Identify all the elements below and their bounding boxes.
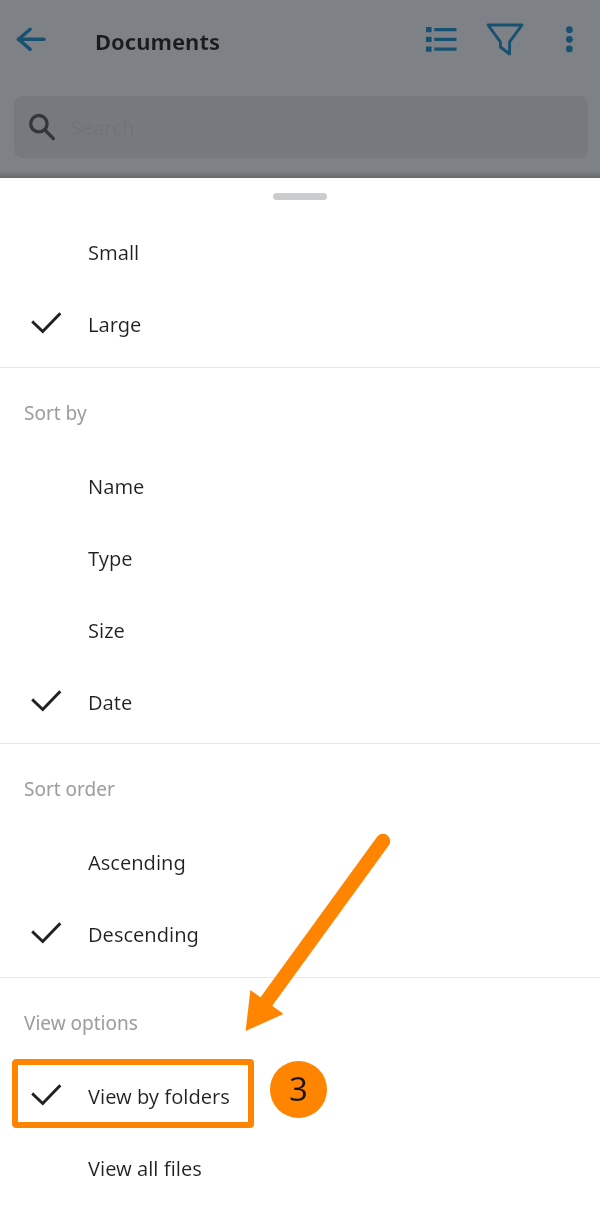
- button[interactable]: Large: [0, 288, 600, 360]
- staticText: Descending: [88, 921, 199, 948]
- button[interactable]: View by folders: [0, 1060, 600, 1132]
- staticText: 3: [289, 1066, 308, 1111]
- staticText: View by folders: [88, 1083, 230, 1110]
- button[interactable]: Ascending: [0, 826, 600, 898]
- staticText: Size: [88, 617, 125, 644]
- button[interactable]: Size: [0, 594, 600, 666]
- staticText: Documents: [95, 26, 220, 56]
- button[interactable]: Small: [0, 216, 600, 288]
- button[interactable]: Descending: [0, 898, 600, 970]
- button[interactable]: Date: [0, 666, 600, 738]
- staticText: Type: [88, 545, 133, 572]
- staticText: Small: [88, 239, 140, 266]
- button[interactable]: Type: [0, 522, 600, 594]
- staticText: Ascending: [88, 849, 186, 876]
- button[interactable]: More options: [541, 11, 597, 67]
- staticText: Date: [88, 689, 133, 716]
- staticText: View options: [24, 1010, 138, 1036]
- staticText: Name: [88, 473, 145, 500]
- staticText: Large: [88, 311, 142, 338]
- button[interactable]: View all files: [0, 1132, 600, 1204]
- button[interactable]: Search: [14, 96, 588, 158]
- staticText: Sort by: [24, 400, 87, 426]
- staticText: View all files: [88, 1155, 202, 1182]
- button[interactable]: Name: [0, 450, 600, 522]
- button[interactable]: Filter: [471, 10, 529, 68]
- button[interactable]: Back: [3, 8, 59, 64]
- button[interactable]: List view: [412, 11, 470, 69]
- staticText: Sort order: [24, 776, 115, 802]
